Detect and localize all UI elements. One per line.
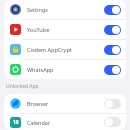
button[interactable]: WhatsApp bbox=[4, 60, 126, 79]
button[interactable]: Cisdem AppCrypt lock toggle bbox=[104, 45, 121, 55]
staticText: Cisdem AppCrypt bbox=[27, 46, 72, 53]
staticText: YouTube bbox=[27, 26, 50, 33]
button[interactable]: Settings lock toggle bbox=[104, 5, 121, 15]
button[interactable]: 18 bbox=[4, 114, 126, 130]
staticText: Browser bbox=[27, 100, 49, 107]
button[interactable]: Calendar lock toggle bbox=[104, 117, 121, 127]
button[interactable]: WhatsApp lock toggle bbox=[104, 65, 121, 75]
button[interactable]: Browser lock toggle bbox=[104, 99, 121, 109]
staticText: Settings bbox=[27, 6, 48, 13]
button[interactable]: Browser bbox=[4, 94, 126, 114]
button[interactable]: YouTube bbox=[4, 20, 126, 40]
staticText: 18 bbox=[13, 119, 19, 126]
button[interactable]: Cisdem AppCrypt bbox=[4, 40, 126, 60]
staticText: Calendar bbox=[27, 119, 51, 126]
button[interactable]: YouTube lock toggle bbox=[104, 25, 121, 35]
button[interactable]: Settings bbox=[4, 0, 126, 20]
staticText: WhatsApp bbox=[27, 66, 54, 73]
staticText: Unlocked App bbox=[6, 83, 39, 90]
